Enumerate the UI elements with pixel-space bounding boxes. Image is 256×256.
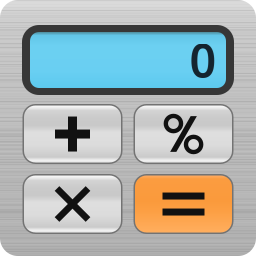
button[interactable]: Percent: [133, 104, 233, 164]
button[interactable]: Multiply: [22, 174, 122, 234]
button[interactable]: Equals: [133, 174, 233, 234]
staticText: 0: [189, 29, 216, 91]
button[interactable]: Plus: [22, 104, 122, 164]
